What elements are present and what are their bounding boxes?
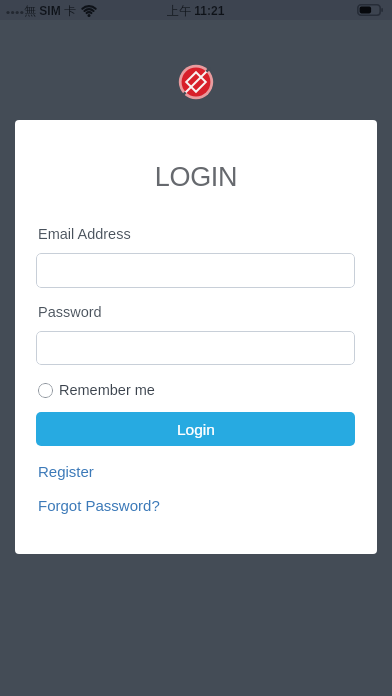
button[interactable]: Register — [38, 463, 94, 480]
staticText: Email Address — [38, 226, 131, 242]
staticText: LOGIN — [15, 162, 377, 192]
button[interactable]: Login — [36, 412, 355, 446]
button[interactable] — [36, 331, 355, 365]
staticText: Password — [38, 304, 102, 320]
staticText: Login — [177, 421, 215, 438]
staticText: Remember me — [59, 382, 155, 398]
button[interactable] — [36, 253, 355, 288]
button[interactable]: Remember me — [38, 382, 155, 398]
button[interactable]: Forgot Password? — [38, 497, 160, 514]
staticText: 無 SIM 卡 — [24, 3, 77, 18]
staticText: 上午 11:21 — [167, 3, 225, 18]
